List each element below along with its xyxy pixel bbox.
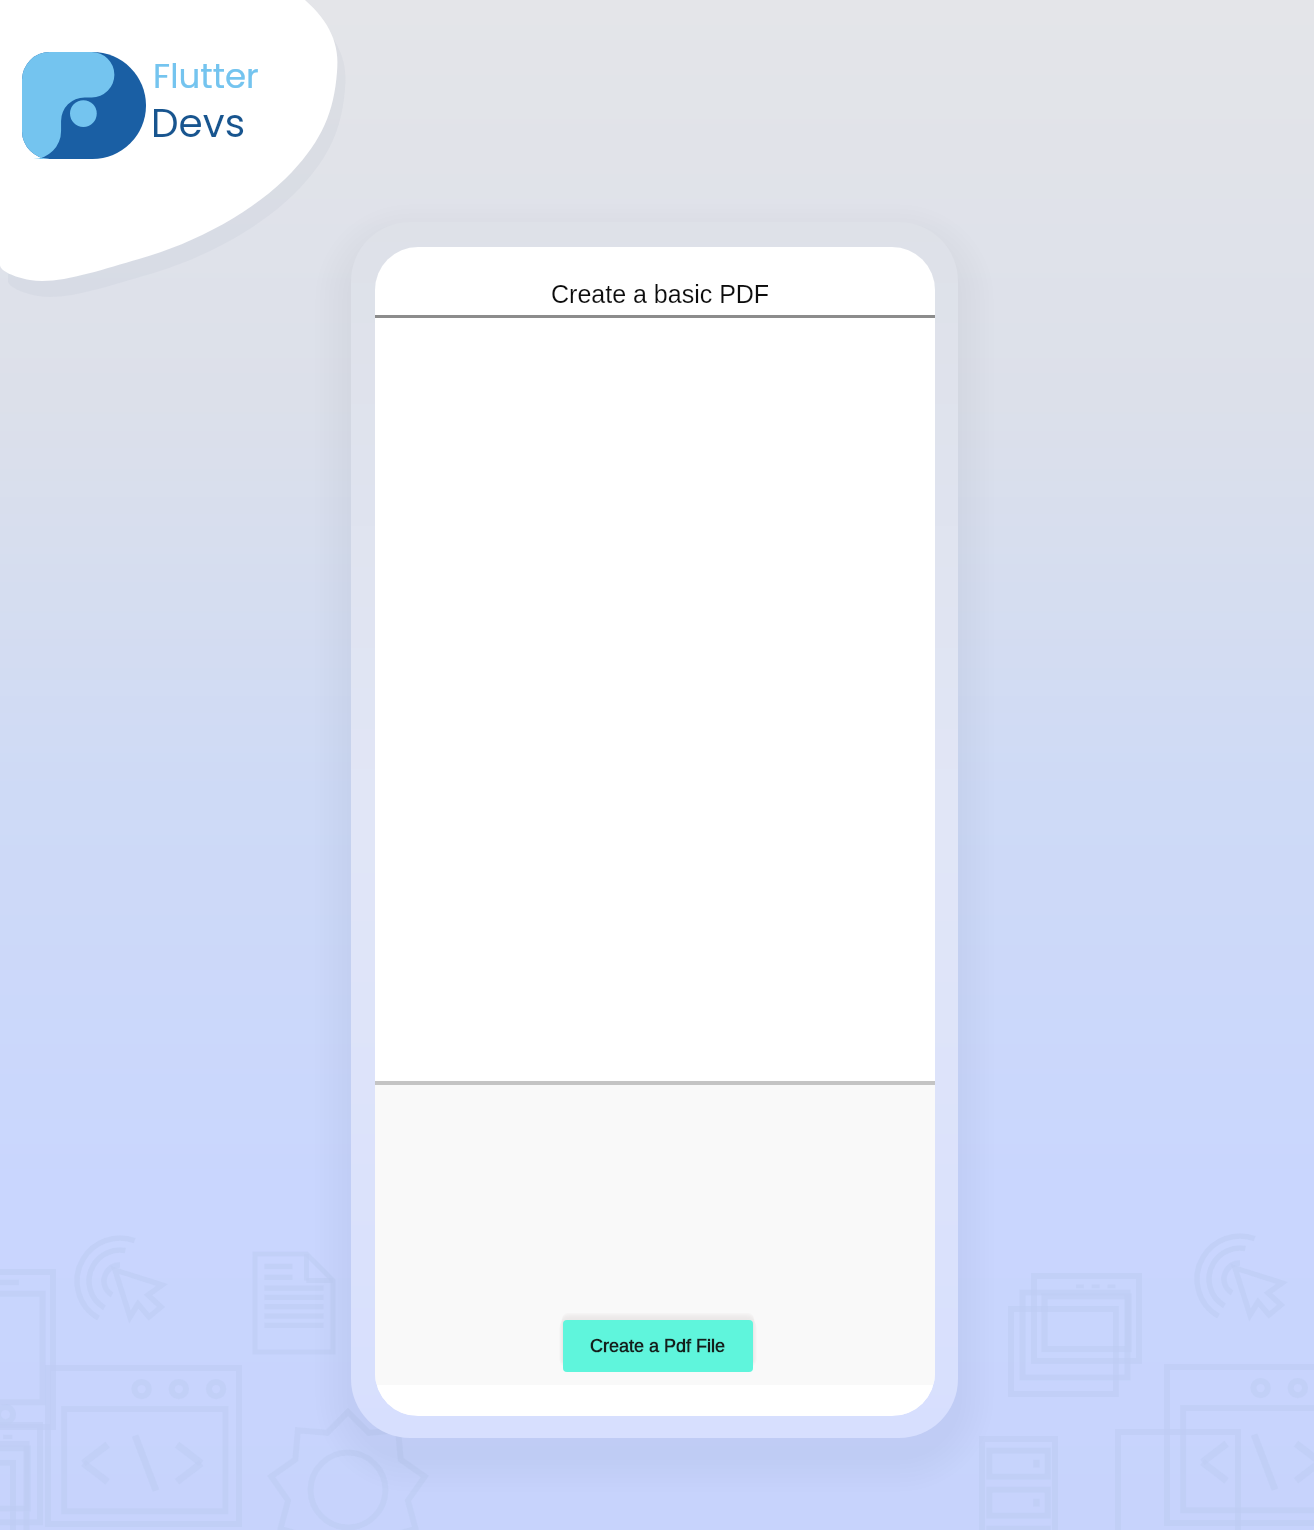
button[interactable]: Create a basic PDF: [375, 247, 935, 315]
staticText: Create a Pdf File: [590, 1336, 726, 1356]
staticText: Create a basic PDF: [551, 280, 770, 308]
button[interactable]: Create a Pdf File: [563, 1320, 753, 1372]
staticText: Flutter: [153, 52, 259, 100]
staticText: Devs: [151, 96, 245, 151]
